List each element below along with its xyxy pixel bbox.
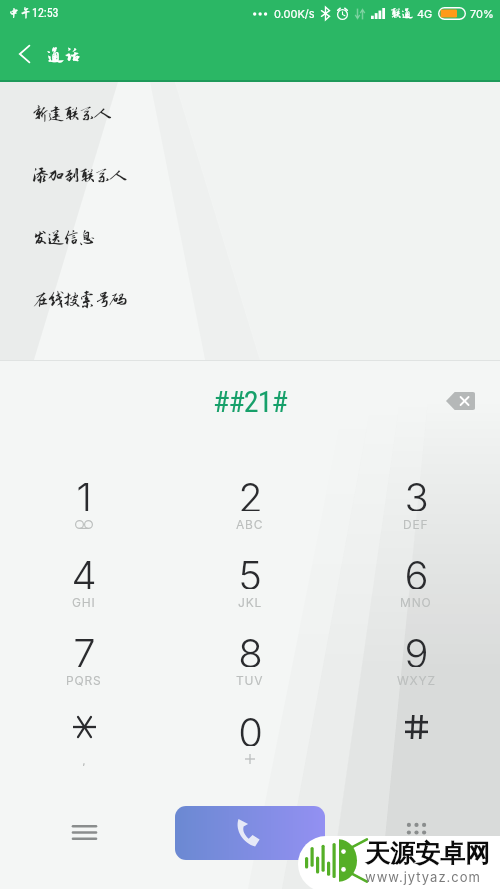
staticText: 添加到联系人 — [32, 166, 126, 185]
button[interactable]: 添加到联系人 — [0, 144, 500, 206]
staticText: 4 — [71, 551, 97, 589]
button[interactable]: 在线搜索号码 — [0, 268, 500, 330]
staticText: 12:53 — [32, 6, 59, 20]
button[interactable]: 3 — [356, 458, 476, 536]
staticText: 70% — [470, 7, 494, 20]
staticText: 3 — [404, 473, 429, 511]
staticText: WXYZ — [397, 673, 436, 687]
button[interactable]: 8 — [190, 614, 310, 692]
button[interactable]: 发送信息 — [0, 206, 500, 268]
button[interactable]: Keypad — [390, 806, 442, 858]
staticText: 新建联系人 — [32, 104, 110, 123]
button[interactable]: 0 — [190, 693, 310, 771]
staticText: 4G — [417, 7, 433, 20]
staticText: 1 — [76, 473, 92, 511]
staticText: GHI — [72, 595, 96, 609]
button[interactable]: 6 — [356, 536, 476, 614]
button[interactable]: , — [24, 693, 144, 771]
staticText: 9 — [404, 629, 429, 667]
button[interactable]: 2 — [190, 458, 310, 536]
staticText: 在线搜索号码 — [32, 290, 126, 309]
button[interactable]: Back — [0, 29, 50, 79]
staticText: 5 — [238, 551, 262, 589]
staticText: MNO — [400, 595, 432, 609]
button[interactable]: 1 — [24, 458, 144, 536]
button[interactable]: 5 — [190, 536, 310, 614]
staticText: 通话 — [47, 45, 82, 64]
button[interactable]: 7 — [24, 614, 144, 692]
staticText: ##21# — [213, 384, 287, 419]
button[interactable]: 4 — [24, 536, 144, 614]
button[interactable]: 9 — [356, 614, 476, 692]
staticText: , — [82, 752, 86, 766]
staticText: PQRS — [66, 673, 102, 687]
staticText: 联通 — [390, 7, 414, 20]
staticText: 8 — [238, 629, 263, 667]
staticText: 0.00K/s — [274, 7, 315, 20]
button[interactable]: Call — [175, 806, 325, 860]
staticText: 0 — [238, 708, 263, 746]
staticText: 中午 — [8, 7, 32, 20]
staticText: 2 — [238, 473, 263, 511]
staticText: 天源安卓网 — [365, 838, 490, 869]
button[interactable]: 新建联系人 — [0, 82, 500, 144]
staticText: 发送信息 — [32, 228, 95, 247]
staticText: JKL — [238, 595, 263, 609]
staticText: www.jytyaz.com — [365, 869, 481, 885]
staticText: DEF — [403, 517, 429, 531]
staticText: 7 — [73, 629, 96, 667]
staticText: 6 — [404, 551, 429, 589]
staticText: TUV — [236, 673, 264, 687]
button[interactable]: Menu — [58, 806, 110, 858]
staticText: ABC — [236, 517, 264, 531]
button[interactable]: Delete — [438, 379, 482, 423]
button[interactable]: Pound — [356, 693, 476, 771]
